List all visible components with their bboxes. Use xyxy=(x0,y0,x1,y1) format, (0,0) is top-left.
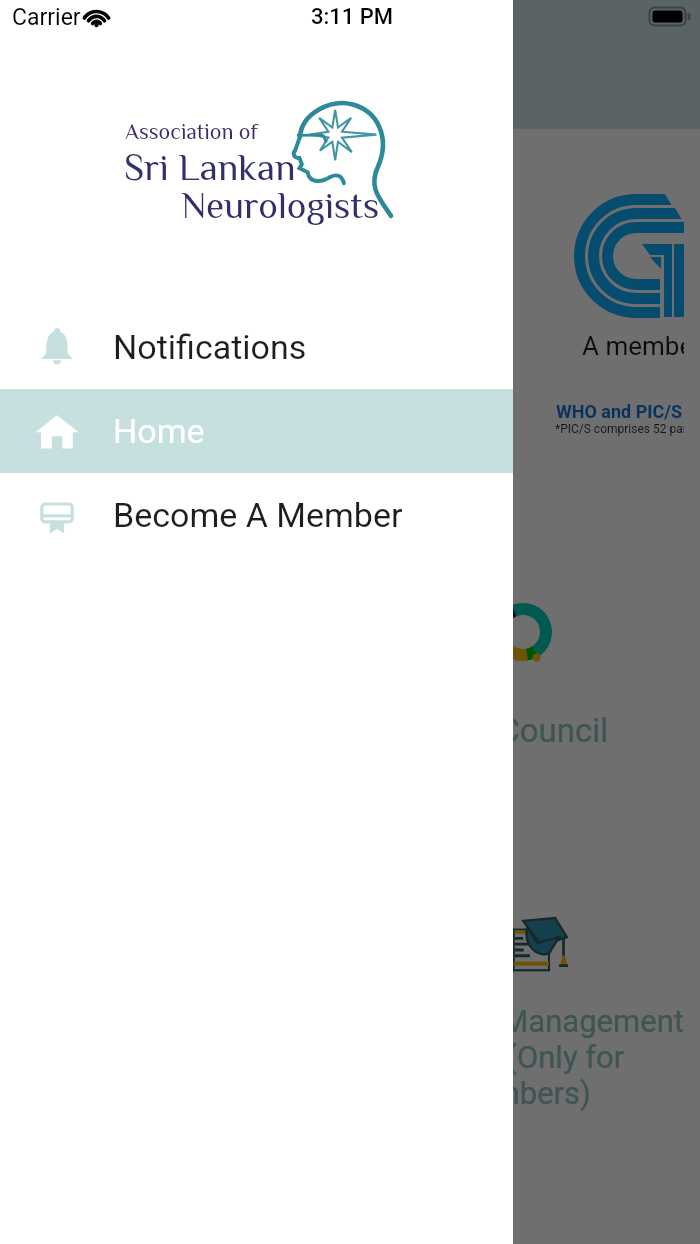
staticText: Notifications xyxy=(113,327,307,367)
staticText: WHO and PIC/S GMP Certified xyxy=(556,401,684,422)
staticText: Neurologists xyxy=(181,185,380,226)
staticText: A member of PIC/S xyxy=(582,331,684,361)
staticText: Home xyxy=(113,411,205,451)
staticText: Sri Lanka Medical Council xyxy=(230,711,609,750)
button[interactable]: Become a member xyxy=(0,473,513,557)
staticText: Carrier xyxy=(12,4,81,31)
staticText: Sri Lankan xyxy=(124,146,296,189)
staticText: *PIC/S comprises 52 participating author… xyxy=(555,422,684,436)
staticText: Become A Member xyxy=(113,495,403,535)
staticText: 3:11 PM xyxy=(311,4,394,30)
button[interactable]: Notifications xyxy=(0,305,513,389)
button[interactable]: Home xyxy=(0,389,513,473)
staticText: Association of xyxy=(125,119,258,144)
other: Battery xyxy=(649,7,691,26)
staticText: Education Management Portal (Only for Me… xyxy=(356,1003,684,1111)
